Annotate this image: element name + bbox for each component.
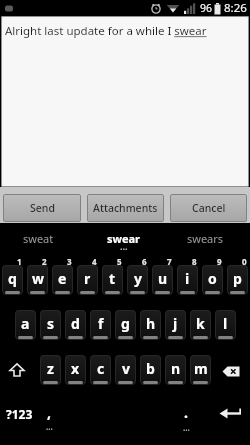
button[interactable]: d: [65, 310, 86, 340]
button[interactable]: sweat: [23, 231, 54, 246]
staticText: u: [158, 269, 168, 288]
staticText: 9: [217, 256, 222, 267]
staticText: ...: [46, 421, 53, 432]
staticText: g: [121, 314, 130, 333]
button[interactable]: [9, 363, 25, 377]
button[interactable]: e: [52, 265, 73, 295]
button[interactable]: f: [90, 310, 111, 340]
button[interactable]: .: [184, 403, 188, 422]
button[interactable]: a: [15, 310, 36, 340]
staticText: c: [97, 359, 105, 378]
button[interactable]: b: [140, 355, 161, 385]
button[interactable]: Attachments: [87, 194, 164, 222]
button[interactable]: i: [177, 265, 198, 295]
staticText: 7: [167, 256, 172, 267]
staticText: 5: [117, 256, 122, 267]
staticText: q: [8, 269, 17, 288]
button[interactable]: Alright last update for a while I swear: [1, 16, 249, 187]
staticText: b: [146, 359, 155, 378]
staticText: l: [223, 314, 228, 333]
button[interactable]: s: [40, 310, 61, 340]
button[interactable]: n: [165, 355, 186, 385]
staticText: a: [21, 314, 30, 333]
staticText: 6: [142, 256, 147, 267]
staticText: 96: [200, 1, 213, 15]
button[interactable]: t: [102, 265, 123, 295]
button[interactable]: h: [140, 310, 161, 340]
staticText: t: [109, 269, 116, 288]
button[interactable]: o: [202, 265, 223, 295]
staticText: j: [173, 314, 178, 333]
staticText: w: [32, 269, 44, 288]
staticText: i: [185, 269, 190, 288]
staticText: Cancel: [192, 201, 226, 215]
staticText: r: [84, 269, 91, 288]
staticText: z: [47, 359, 54, 378]
staticText: m: [194, 359, 208, 378]
button[interactable]: p: [227, 265, 248, 295]
button[interactable]: v: [115, 355, 136, 385]
staticText: s: [47, 314, 55, 333]
staticText: 1: [17, 256, 22, 267]
button[interactable]: g: [115, 310, 136, 340]
staticText: h: [146, 314, 156, 333]
button[interactable]: r: [77, 265, 98, 295]
button[interactable]: y: [127, 265, 148, 295]
staticText: n: [171, 359, 181, 378]
button[interactable]: w: [27, 265, 48, 295]
button[interactable]: j: [165, 310, 186, 340]
button[interactable]: swear: [107, 231, 141, 246]
staticText: 4: [92, 256, 97, 267]
button[interactable]: u: [152, 265, 173, 295]
button[interactable]: Cancel: [170, 194, 247, 222]
button[interactable]: ,: [47, 403, 51, 422]
staticText: k: [196, 314, 205, 333]
staticText: ...: [183, 422, 190, 433]
staticText: Alright last update for a while I swear: [5, 23, 207, 39]
staticText: 2: [42, 256, 47, 267]
button[interactable]: swears: [187, 231, 224, 246]
button[interactable]: c: [90, 355, 111, 385]
button[interactable]: [219, 408, 243, 419]
staticText: y: [134, 269, 142, 288]
staticText: e: [58, 269, 67, 288]
button[interactable]: q: [2, 265, 23, 295]
staticText: x: [71, 359, 80, 378]
button[interactable]: ?123: [6, 406, 33, 422]
staticText: 8:26: [224, 0, 247, 16]
staticText: 0: [242, 256, 247, 267]
staticText: v: [122, 359, 130, 378]
staticText: Send: [30, 201, 55, 215]
staticText: Attachments: [93, 201, 158, 215]
button[interactable]: Send: [3, 194, 81, 222]
staticText: 3: [67, 256, 72, 267]
staticText: o: [208, 269, 217, 288]
staticText: f: [98, 314, 104, 333]
button[interactable]: z: [40, 355, 61, 385]
staticText: p: [233, 269, 242, 288]
staticText: 8: [192, 256, 197, 267]
button[interactable]: x: [65, 355, 86, 385]
button[interactable]: m: [190, 355, 211, 385]
button[interactable]: l: [215, 310, 236, 340]
staticText: ...: [120, 240, 128, 252]
button[interactable]: [222, 366, 240, 377]
button[interactable]: k: [190, 310, 211, 340]
staticText: d: [71, 314, 80, 333]
